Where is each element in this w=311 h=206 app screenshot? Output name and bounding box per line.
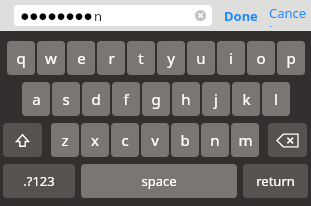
button[interactable]: w [37,41,65,75]
button[interactable]: l [262,82,290,116]
button[interactable]: return [243,164,308,198]
button[interactable]: Done [222,3,260,29]
button[interactable]: m [231,123,259,157]
button[interactable]: y [157,41,185,75]
staticText: h [181,89,191,109]
staticText: o [256,48,266,68]
staticText: l [274,89,278,109]
staticText: j [214,89,218,109]
staticText: space [141,172,177,190]
button[interactable]: g [142,82,170,116]
staticText: .?123 [23,172,55,190]
staticText: return [256,172,295,190]
staticText: z [61,130,69,150]
staticText: t [138,48,144,68]
button[interactable]: b [171,123,199,157]
staticText: b [180,130,190,150]
button[interactable]: k [232,82,260,116]
button[interactable]: o [247,41,275,75]
button[interactable]: q [7,41,35,75]
button[interactable]: d [82,82,110,116]
button[interactable]: e [67,41,95,75]
staticText: n [210,130,220,150]
staticText: ●●●●●●●● [21,11,94,21]
staticText: n [94,7,103,25]
button[interactable]: Backspace [268,123,307,157]
button[interactable]: j [202,82,230,116]
button[interactable]: f [112,82,140,116]
button[interactable]: Clear text [192,7,209,24]
button[interactable]: space [81,164,237,198]
button[interactable]: n [201,123,229,157]
button[interactable]: .?123 [3,164,75,198]
button[interactable]: i [217,41,245,75]
staticText: u [196,48,206,68]
staticText: x [91,130,99,150]
button[interactable]: r [97,41,125,75]
button[interactable]: s [52,82,80,116]
staticText: y [167,48,175,68]
staticText: r [108,48,115,68]
button[interactable]: Cancel [267,0,311,31]
staticText: s [62,89,70,109]
button[interactable]: c [111,123,139,157]
staticText: e [77,48,86,68]
button[interactable]: z [51,123,79,157]
button[interactable]: Shift [3,123,42,157]
staticText: q [16,48,26,68]
staticText: d [91,89,101,109]
button[interactable]: h [172,82,200,116]
staticText: k [242,89,251,109]
staticText: c [121,130,129,150]
staticText: g [151,89,161,109]
button[interactable]: p [277,41,305,75]
staticText: p [286,48,296,68]
staticText: v [151,130,159,150]
button[interactable]: x [81,123,109,157]
staticText: i [229,48,233,68]
staticText: Cancel [269,4,309,27]
staticText: m [238,130,253,150]
button[interactable]: ●●●●●●●● [14,5,212,26]
button[interactable]: t [127,41,155,75]
staticText: w [45,48,57,68]
button[interactable]: a [22,82,50,116]
button[interactable]: u [187,41,215,75]
button[interactable]: v [141,123,169,157]
staticText: f [123,89,129,109]
staticText: Done [224,7,258,25]
staticText: a [32,89,41,109]
